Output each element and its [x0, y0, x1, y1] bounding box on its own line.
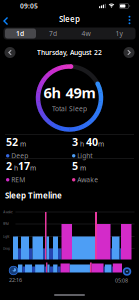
- button[interactable]: 1y: [102, 27, 135, 39]
- staticText: h: [12, 163, 18, 172]
- staticText: 6h 49m: [43, 83, 95, 102]
- staticText: h: [78, 139, 86, 148]
- staticText: 2: [6, 159, 12, 173]
- button[interactable]: Next day: [123, 47, 134, 58]
- staticText: 1d: [16, 29, 24, 38]
- staticText: 52: [6, 135, 18, 149]
- staticText: 4w: [81, 29, 90, 38]
- staticText: 22:16: [9, 276, 22, 284]
- staticText: Light: [2, 234, 10, 239]
- staticText: 3: [72, 135, 78, 149]
- staticText: 09:05: [20, 2, 38, 10]
- staticText: m: [78, 163, 86, 172]
- staticText: Awake: [77, 175, 98, 184]
- staticText: 40: [86, 135, 98, 149]
- button[interactable]: 4w: [69, 27, 102, 39]
- staticText: Awake: [2, 209, 14, 215]
- staticText: m: [18, 139, 26, 148]
- staticText: Total Sleep: [52, 104, 87, 113]
- button[interactable]: 7d: [36, 27, 69, 39]
- staticText: Thursday, August 22: [37, 48, 102, 57]
- button[interactable]: 1d: [3, 27, 36, 39]
- staticText: REM: [2, 221, 10, 227]
- button[interactable]: Previous day: [4, 47, 15, 58]
- staticText: Deep: [2, 246, 11, 251]
- staticText: m: [98, 139, 104, 148]
- button[interactable]: Back: [3, 16, 10, 25]
- staticText: 17: [18, 159, 30, 173]
- staticText: 05:08: [115, 277, 128, 284]
- staticText: Light: [77, 151, 92, 160]
- staticText: 5: [72, 159, 78, 173]
- staticText: m: [30, 163, 36, 172]
- staticText: Sleep: [59, 14, 80, 24]
- staticText: 7d: [49, 29, 57, 38]
- staticText: REM: [11, 175, 25, 184]
- button[interactable]: More: [125, 14, 133, 25]
- staticText: 1y: [115, 29, 122, 38]
- staticText: Sleep Timeline: [5, 190, 62, 201]
- staticText: Deep: [11, 151, 28, 160]
